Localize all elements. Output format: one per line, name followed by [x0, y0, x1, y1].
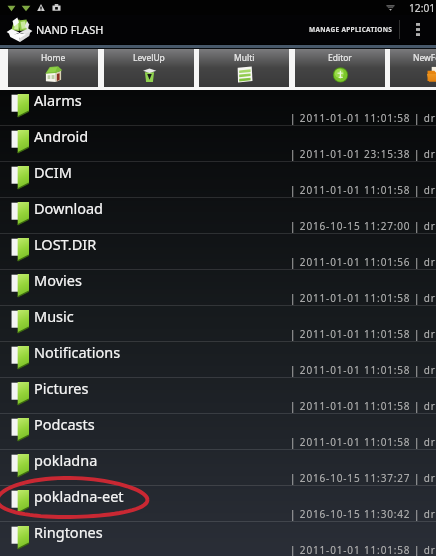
staticText: pokladna	[34, 450, 98, 470]
button[interactable]: DCIM	[0, 162, 436, 198]
staticText: Notifications	[34, 342, 121, 362]
staticText: | 2011-01-01 11:01:58 | drwxrwx---	[290, 183, 436, 197]
staticText: Music	[34, 306, 74, 326]
staticText: Home	[41, 52, 66, 64]
button[interactable]: LevelUp	[104, 49, 194, 87]
staticText: NewFolder	[413, 52, 436, 64]
staticText: Download	[34, 198, 103, 218]
staticText: | 2011-01-01 11:01:58 | drwxrwx---	[290, 291, 436, 305]
staticText: | 2011-01-01 23:15:38 | drwxrwx---	[290, 147, 436, 161]
button[interactable]: Notifications	[0, 342, 436, 378]
button[interactable]: Home	[8, 49, 98, 87]
staticText: Ringtones	[34, 522, 103, 542]
staticText: | 2011-01-01 11:01:58 | drwxrwx---	[290, 399, 436, 413]
staticText: | 2011-01-01 11:01:58 | drwxrwx---	[290, 327, 436, 341]
button[interactable]: LOST.DIR	[0, 234, 436, 270]
staticText: MANAGE APPLICATIONS	[309, 25, 393, 34]
button[interactable]: Pictures	[0, 378, 436, 414]
button[interactable]: MANAGE APPLICATIONS	[303, 15, 399, 44]
button[interactable]: More options	[400, 15, 436, 44]
button[interactable]: pokladna	[0, 450, 436, 486]
staticText: | 2011-01-01 11:01:58 | drwxrwx---	[290, 435, 436, 449]
button[interactable]: Movies	[0, 270, 436, 306]
button[interactable]: Editor	[295, 49, 385, 87]
staticText: Editor	[328, 52, 352, 64]
staticText: LevelUp	[133, 52, 165, 64]
button[interactable]: Alarms	[0, 90, 436, 126]
staticText: 12:01	[409, 1, 436, 15]
staticText: Movies	[34, 270, 82, 290]
staticText: | 2011-01-01 11:01:56 | drwxrwx---	[290, 255, 436, 269]
staticText: Pictures	[34, 378, 89, 398]
staticText: | 2016-10-15 11:30:42 | drwxrwx---	[290, 507, 436, 521]
staticText: Multi	[234, 52, 255, 64]
staticText: NAND FLASH	[36, 22, 104, 37]
staticText: | 2016-10-15 11:37:27 | drwxrwx---	[290, 471, 436, 485]
staticText: pokladna-eet	[34, 486, 124, 506]
button[interactable]: Podcasts	[0, 414, 436, 450]
staticText: | 2011-01-01 11:01:58 | drwxrwx---	[290, 363, 436, 377]
button[interactable]: pokladna-eet	[0, 486, 436, 522]
staticText: Alarms	[34, 90, 82, 110]
staticText: | 2016-10-15 11:27:00 | drwxrwx---	[290, 219, 436, 233]
button[interactable]: Download	[0, 198, 436, 234]
staticText: Podcasts	[34, 414, 95, 434]
staticText: Android	[34, 126, 89, 146]
staticText: | 2011-01-01 11:01:58 | drwxrwx---	[290, 111, 436, 125]
button[interactable]: Ringtones	[0, 522, 436, 556]
staticText: DCIM	[34, 162, 72, 182]
button[interactable]: Multi	[199, 49, 289, 87]
button[interactable]: Music	[0, 306, 436, 342]
button[interactable]: NAND FLASH	[6, 15, 104, 44]
staticText: LOST.DIR	[34, 234, 97, 254]
button[interactable]: Android	[0, 126, 436, 162]
staticText: | 2011-01-01 11:01:58 | drwxrwx---	[290, 543, 436, 556]
button[interactable]: NewFolder	[390, 49, 436, 87]
